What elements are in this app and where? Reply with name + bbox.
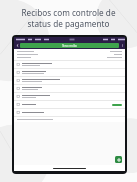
button[interactable]: Novo recibo [20, 43, 119, 48]
button[interactable] [14, 69, 125, 76]
staticText: Novo recibo [20, 44, 119, 48]
button[interactable]: Adicionar recibo [115, 156, 122, 163]
button[interactable] [14, 101, 125, 108]
button[interactable]: Voltar [14, 42, 20, 49]
button[interactable] [14, 61, 125, 68]
staticText: Recibos com controle de status de pagame… [8, 7, 129, 29]
button[interactable] [14, 85, 125, 92]
button[interactable] [14, 77, 125, 84]
button[interactable] [14, 109, 125, 116]
button[interactable]: Mais opções [119, 42, 125, 49]
button[interactable] [14, 93, 125, 100]
